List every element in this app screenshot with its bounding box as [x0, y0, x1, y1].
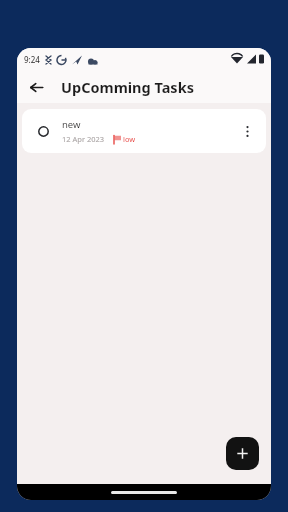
staticText: 12 Apr 2023 [62, 134, 105, 144]
button[interactable]: Back [23, 74, 49, 100]
button[interactable]: More options [234, 118, 260, 144]
staticText: 9:24 [24, 54, 40, 65]
staticText: new [62, 118, 81, 131]
staticText: UpComming Tasks [61, 77, 194, 97]
button[interactable]: Mark complete [22, 109, 266, 153]
staticText: low [123, 134, 136, 144]
button[interactable]: Mark complete [32, 120, 54, 142]
button[interactable]: Add task [226, 437, 259, 470]
